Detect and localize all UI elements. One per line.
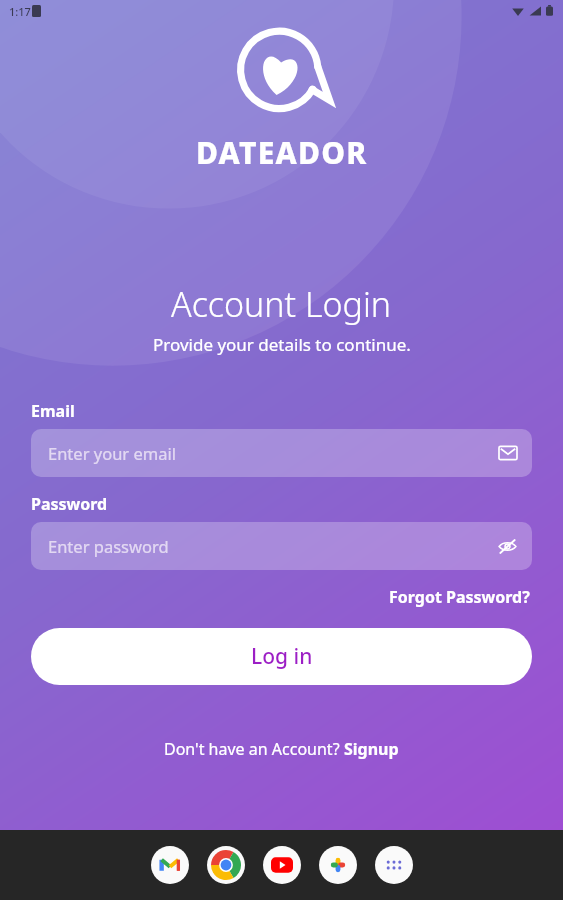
button[interactable]: Log in [31,628,532,685]
staticText: 1:17 [9,4,31,19]
button[interactable]: All apps [375,846,413,884]
staticText: Email [31,400,75,422]
staticText: Enter your email [48,442,499,464]
staticText: Signup [344,738,399,760]
other: Show password [498,537,517,556]
staticText: Provide your details to continue. [153,333,411,356]
staticText: DATEADOR [196,132,368,173]
button[interactable]: Don't have an Account? [160,735,403,763]
staticText: Forgot Password? [389,586,530,608]
staticText: Log in [251,642,313,671]
button[interactable]: Gmail [151,846,189,884]
button[interactable]: Chrome [207,846,245,884]
staticText: Password [31,493,108,515]
staticText: Don't have an Account? [164,738,344,760]
button[interactable]: Enter password [31,522,532,570]
staticText: Enter password [48,535,498,557]
button[interactable]: YouTube [263,846,301,884]
button[interactable]: Forgot Password? [387,584,532,610]
other: Email [499,444,517,462]
button[interactable]: Photos [319,846,357,884]
button[interactable]: Enter your email [31,429,532,477]
staticText: Account Login [171,281,392,327]
other: Dateador logo [236,28,328,120]
